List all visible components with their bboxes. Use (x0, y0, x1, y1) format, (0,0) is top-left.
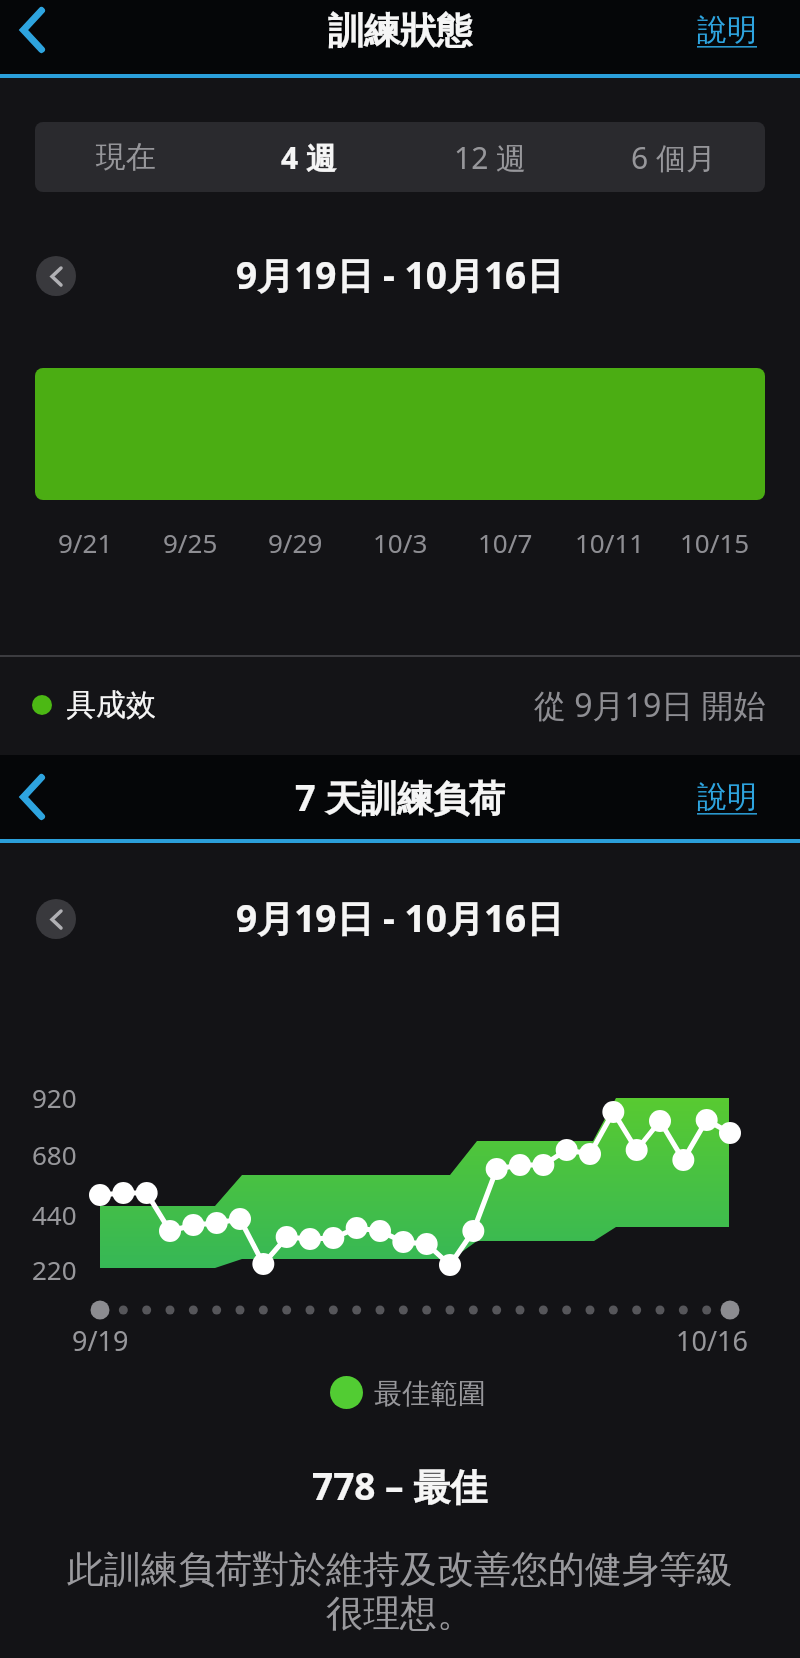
button[interactable] (20, 774, 45, 820)
staticText: 此訓練負荷對於維持及改善您的健身等級 很理想。 (67, 1546, 733, 1637)
staticText: 說明 (697, 778, 757, 816)
button[interactable]: 4 週 (217, 122, 399, 192)
button[interactable]: 6 個月 (582, 122, 765, 192)
staticText: 12 週 (454, 137, 527, 178)
staticText: 9/25 (163, 525, 218, 555)
staticText: 440 (32, 1197, 77, 1227)
staticText: 4 週 (281, 137, 336, 178)
staticText: 具成效 (66, 686, 156, 724)
button[interactable]: 說明 (672, 0, 782, 60)
button[interactable]: 說明 (672, 767, 782, 827)
staticText: 訓練狀態 (328, 8, 472, 53)
staticText: 說明 (697, 11, 757, 49)
staticText: 220 (32, 1252, 77, 1282)
staticText: 10/15 (680, 525, 750, 555)
staticText: 現在 (96, 138, 156, 176)
button[interactable] (20, 7, 45, 53)
button[interactable]: 具成效 (0, 655, 800, 755)
staticText: 10/11 (575, 525, 645, 555)
staticText: 9月19日 - 10月16日 (236, 249, 564, 297)
staticText: 9/19 (72, 1322, 129, 1354)
button[interactable] (36, 899, 76, 939)
button[interactable]: 12 週 (399, 122, 582, 192)
button[interactable] (36, 256, 76, 296)
staticText: 920 (32, 1080, 77, 1110)
staticText: 10/16 (676, 1322, 748, 1354)
staticText: 680 (32, 1137, 77, 1167)
staticText: 最佳範圍 (374, 1376, 486, 1409)
staticText: 6 個月 (631, 137, 716, 178)
staticText: 7 天訓練負荷 (295, 773, 505, 822)
staticText: 從 9月19日 開始 (534, 683, 766, 727)
staticText: 778 – 最佳 (312, 1460, 488, 1510)
staticText: 9/21 (58, 525, 113, 555)
staticText: 9/29 (268, 525, 323, 555)
staticText: 9月19日 - 10月16日 (236, 892, 564, 940)
staticText: 10/7 (478, 525, 533, 555)
button[interactable]: 現在 (35, 122, 217, 192)
staticText: 10/3 (373, 525, 428, 555)
